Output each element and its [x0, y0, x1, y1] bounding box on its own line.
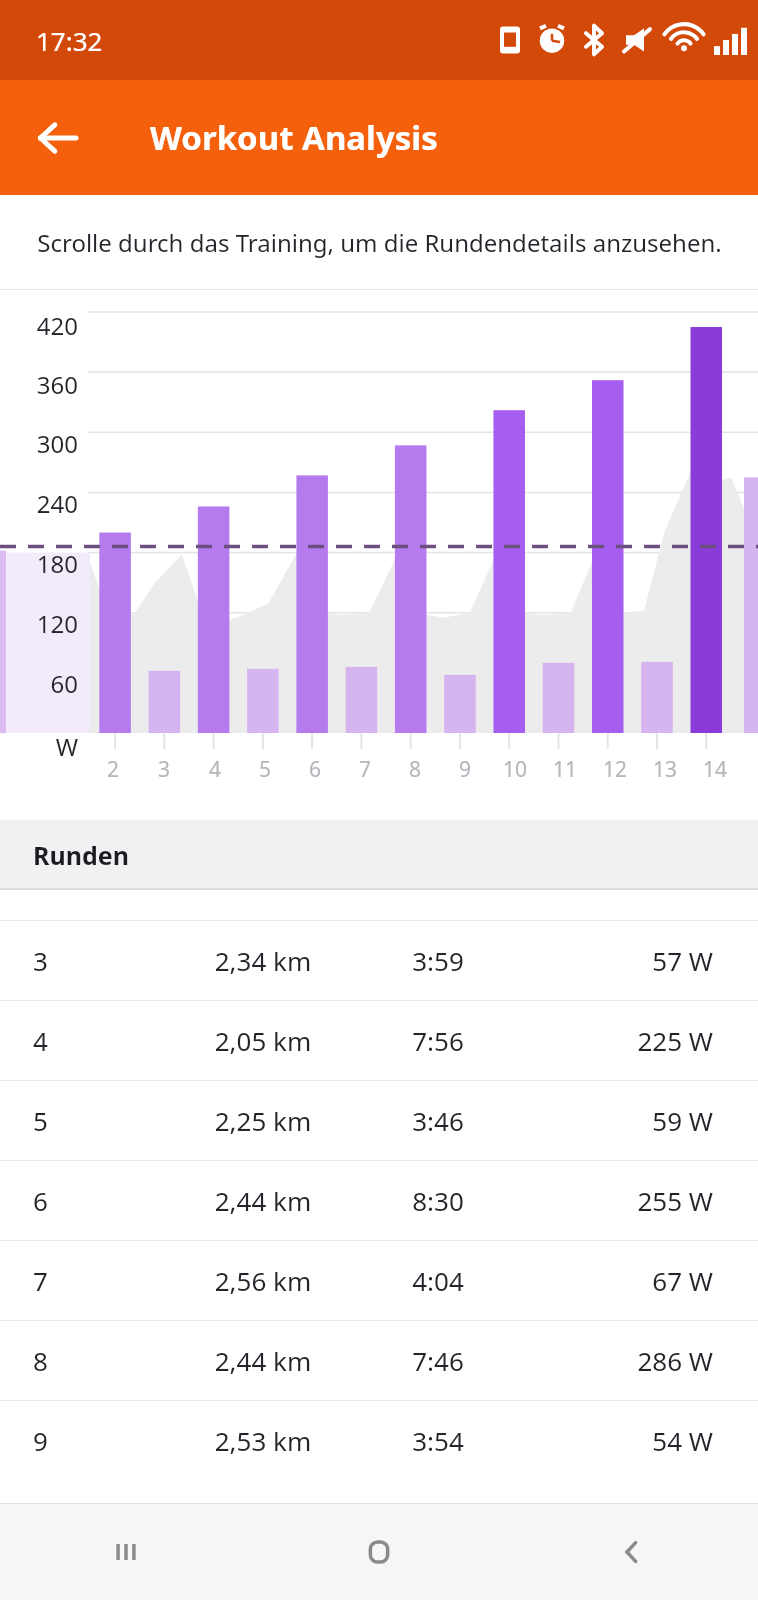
staticText: 8 — [33, 1343, 163, 1378]
staticText: 2,53 km — [163, 1423, 363, 1458]
button[interactable]: 4 — [0, 1001, 758, 1080]
button[interactable]: Home — [252, 1503, 505, 1600]
button[interactable]: 9 — [0, 1401, 758, 1480]
button[interactable]: 7 — [0, 1241, 758, 1320]
staticText: 300 — [0, 427, 78, 460]
staticText: 4 — [33, 1023, 163, 1058]
staticText: 2,56 km — [163, 1263, 363, 1298]
staticText: 2,34 km — [163, 943, 363, 978]
staticText: 255 W — [513, 1183, 713, 1218]
staticText: 10 — [503, 755, 528, 784]
staticText: Runden — [33, 838, 129, 872]
staticText: 3:54 — [363, 1423, 513, 1458]
staticText: Scrolle durch das Training, um die Runde… — [37, 226, 722, 259]
staticText: 240 — [0, 487, 78, 520]
staticText: 8 — [409, 755, 422, 784]
button[interactable]: 5 — [0, 1081, 758, 1160]
staticText: 3:59 — [363, 943, 513, 978]
staticText: 8:30 — [363, 1183, 513, 1218]
button[interactable]: Back — [22, 102, 94, 174]
button[interactable]: Back — [505, 1503, 758, 1600]
staticText: 12 — [603, 755, 628, 784]
staticText: Workout Analysis — [150, 115, 438, 160]
staticText: 2,05 km — [163, 1023, 363, 1058]
staticText: 5 — [259, 755, 272, 784]
staticText: 2,44 km — [163, 1343, 363, 1378]
staticText: 57 W — [513, 943, 713, 978]
staticText: 54 W — [513, 1423, 713, 1458]
button[interactable]: Recent apps — [0, 1503, 252, 1600]
staticText: 6 — [309, 755, 322, 784]
button[interactable]: 3 — [0, 921, 758, 1000]
staticText: 9 — [459, 755, 472, 784]
staticText: 59 W — [513, 1103, 713, 1138]
staticText: 420 — [0, 309, 78, 342]
staticText: 3 — [33, 943, 163, 978]
staticText: 2,25 km — [163, 1103, 363, 1138]
staticText: 11 — [553, 755, 578, 784]
staticText: 3:46 — [363, 1103, 513, 1138]
staticText: 180 — [0, 547, 78, 580]
staticText: 4:04 — [363, 1263, 513, 1298]
staticText: 2,44 km — [163, 1183, 363, 1218]
staticText: 6 — [33, 1183, 163, 1218]
staticText: 7 — [33, 1263, 163, 1298]
staticText: 60 — [0, 667, 78, 700]
staticText: 286 W — [513, 1343, 713, 1378]
staticText: 17:32 — [36, 23, 103, 58]
staticText: 7:56 — [363, 1023, 513, 1058]
staticText: 9 — [33, 1423, 163, 1458]
button[interactable]: 8 — [0, 1321, 758, 1400]
staticText: W — [0, 730, 78, 763]
staticText: 225 W — [513, 1023, 713, 1058]
staticText: 13 — [653, 755, 678, 784]
staticText: 4 — [209, 755, 222, 784]
staticText: 3 — [158, 755, 171, 784]
staticText: 360 — [0, 368, 78, 401]
staticText: 5 — [33, 1103, 163, 1138]
staticText: 14 — [703, 755, 728, 784]
staticText: 7:46 — [363, 1343, 513, 1378]
staticText: 7 — [359, 755, 372, 784]
staticText: 67 W — [513, 1263, 713, 1298]
staticText: 120 — [0, 607, 78, 640]
button[interactable]: 6 — [0, 1161, 758, 1240]
staticText: 2 — [107, 755, 120, 784]
